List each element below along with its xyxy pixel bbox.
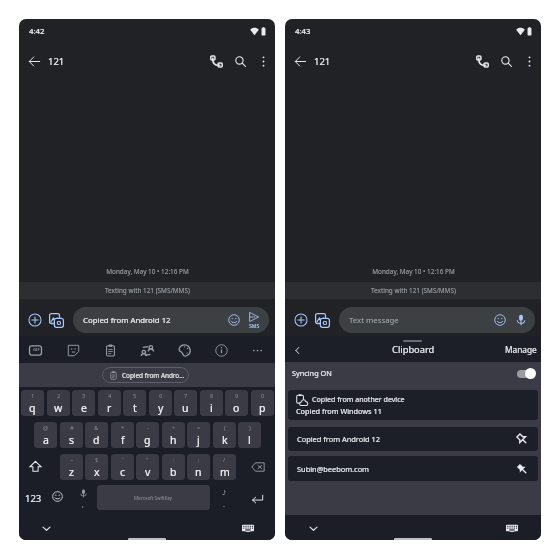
button[interactable]: 2 bbox=[47, 390, 70, 416]
button[interactable]: Gallery bbox=[49, 313, 64, 328]
staticText: e bbox=[81, 401, 87, 415]
staticText: 5 bbox=[133, 392, 137, 400]
button[interactable]: $ bbox=[85, 454, 108, 480]
button[interactable]: Call bbox=[476, 55, 489, 68]
staticText: 0 bbox=[261, 392, 265, 400]
button[interactable]: GIF bbox=[29, 344, 42, 357]
button[interactable]: More options bbox=[257, 55, 270, 68]
button[interactable]: Search bbox=[500, 55, 513, 68]
button[interactable]: Text message bbox=[339, 307, 535, 333]
staticText: Monday, May 10 • 12:16 PM bbox=[372, 267, 455, 276]
staticText: 4:42 bbox=[29, 26, 45, 37]
staticText: $ bbox=[95, 456, 99, 464]
button[interactable]: Change keyboard bbox=[242, 522, 254, 534]
staticText: ; bbox=[198, 456, 200, 464]
button[interactable]: Microsoft SwiftKey bbox=[97, 485, 210, 510]
button[interactable]: Contacts bbox=[141, 344, 154, 357]
button[interactable]: ( bbox=[213, 422, 236, 448]
staticText: n bbox=[195, 465, 202, 479]
button[interactable]: ` bbox=[111, 454, 134, 480]
button[interactable]: Back bbox=[294, 55, 307, 68]
button[interactable]: ~ bbox=[60, 454, 83, 480]
button[interactable]: Shift bbox=[29, 460, 42, 473]
button[interactable]: 9 bbox=[225, 390, 248, 416]
button[interactable]: Backspace bbox=[251, 460, 265, 474]
button[interactable]: # bbox=[60, 422, 83, 448]
staticText: s bbox=[69, 433, 75, 447]
button[interactable]: 1 bbox=[21, 390, 44, 416]
staticText: c bbox=[120, 465, 126, 479]
button[interactable]: Hide keyboard bbox=[41, 523, 52, 534]
button[interactable]: Copied from Android 12 bbox=[73, 307, 269, 333]
button[interactable]: + bbox=[162, 422, 185, 448]
button[interactable]: Stickers bbox=[67, 344, 80, 357]
button[interactable]: 8 bbox=[200, 390, 223, 416]
staticText: 9 bbox=[235, 392, 239, 400]
button[interactable]: & bbox=[85, 422, 108, 448]
button[interactable]: Copied from Andro… bbox=[102, 367, 189, 383]
staticText: w bbox=[54, 401, 63, 415]
other: Unpin bbox=[516, 463, 528, 475]
button[interactable]: 123 bbox=[21, 489, 45, 508]
button[interactable]: 3 bbox=[72, 390, 95, 416]
button[interactable]: Gallery bbox=[315, 313, 330, 328]
button[interactable]: * bbox=[111, 422, 134, 448]
button[interactable]: 5 bbox=[123, 390, 146, 416]
button[interactable]: Call bbox=[210, 55, 223, 68]
button[interactable]: Copied from another device bbox=[288, 390, 538, 420]
staticText: Copied from Windows 11 bbox=[296, 406, 382, 416]
button[interactable]: ; bbox=[187, 454, 210, 480]
button[interactable]: / bbox=[213, 454, 236, 480]
staticText: Subin@beebom.com bbox=[297, 464, 370, 474]
staticText: 3 bbox=[82, 392, 86, 400]
button[interactable]: Copied from Android 12 bbox=[288, 427, 538, 451]
button[interactable]: - bbox=[136, 422, 159, 448]
staticText: ~ bbox=[70, 456, 74, 464]
staticText: i bbox=[210, 401, 213, 415]
button[interactable]: ) bbox=[238, 422, 261, 448]
staticText: b bbox=[170, 465, 177, 479]
staticText: + bbox=[172, 424, 176, 432]
button[interactable]: Search bbox=[234, 55, 247, 68]
staticText: ♪ bbox=[222, 489, 227, 497]
staticText: Copied from Andro… bbox=[122, 371, 185, 380]
button[interactable]: = bbox=[187, 422, 210, 448]
staticText: q bbox=[29, 401, 36, 415]
button[interactable]: Change keyboard bbox=[506, 522, 518, 534]
button[interactable]: Emoji bbox=[52, 491, 63, 502]
button[interactable]: @ bbox=[34, 422, 57, 448]
button[interactable]: 4 bbox=[98, 390, 121, 416]
button[interactable]: Clipboard bbox=[375, 339, 451, 359]
staticText: * bbox=[121, 424, 125, 432]
staticText: Syncing ON bbox=[292, 368, 332, 378]
staticText: l bbox=[248, 433, 251, 447]
staticText: 8 bbox=[210, 392, 214, 400]
button[interactable]: 7 bbox=[174, 390, 197, 416]
button[interactable]: Add bbox=[28, 313, 42, 327]
button[interactable]: Manage bbox=[491, 339, 537, 359]
button[interactable]: Syncing ON bbox=[285, 362, 541, 385]
staticText: Copied from another device bbox=[312, 394, 405, 404]
button[interactable]: More options bbox=[523, 55, 536, 68]
button[interactable]: Themes bbox=[178, 344, 191, 357]
staticText: t bbox=[133, 401, 137, 415]
button[interactable]: : bbox=[162, 454, 185, 480]
staticText: 121 bbox=[314, 55, 331, 68]
button[interactable]: Hide keyboard bbox=[308, 523, 319, 534]
staticText: . bbox=[223, 500, 225, 510]
button[interactable]: Clipboard bbox=[104, 344, 117, 357]
button[interactable]: Enter bbox=[251, 492, 264, 505]
button[interactable]: Subin@beebom.com bbox=[288, 456, 538, 481]
button[interactable]: Info bbox=[215, 344, 228, 357]
button[interactable]: More bbox=[251, 344, 264, 357]
staticText: f bbox=[121, 433, 125, 447]
button[interactable]: Back bbox=[28, 55, 41, 68]
staticText: " bbox=[146, 456, 149, 464]
button[interactable]: 0 bbox=[251, 390, 274, 416]
button[interactable]: 6 bbox=[149, 390, 172, 416]
button[interactable]: Add bbox=[294, 313, 308, 327]
staticText: o bbox=[233, 401, 240, 415]
staticText: v bbox=[145, 465, 151, 479]
button[interactable]: " bbox=[136, 454, 159, 480]
button[interactable]: Back bbox=[292, 345, 303, 356]
